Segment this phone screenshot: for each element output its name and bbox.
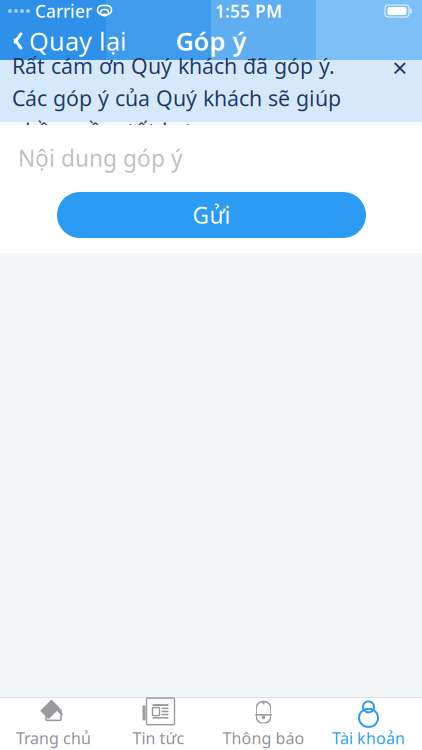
staticText: Quay lại [29, 24, 127, 58]
staticText: ✕ [391, 57, 408, 80]
button[interactable]: Quay lại [0, 22, 139, 60]
staticText: Tài khoản [332, 727, 405, 749]
staticText: Góp ý [175, 24, 246, 58]
staticText: Thông báo [222, 727, 304, 749]
staticText: Rất cám ơn Quý khách đã góp ý. Các góp ý… [12, 51, 341, 144]
button[interactable]: Tin tức [106, 698, 211, 750]
button[interactable]: Thông báo [211, 698, 316, 750]
button[interactable]: Tài khoản [316, 698, 421, 750]
staticText: Nội dung góp ý [18, 143, 183, 173]
staticText: 1:55 PM [215, 0, 282, 22]
button[interactable]: Đóng [378, 37, 422, 99]
staticText: Tin tức [132, 727, 184, 749]
staticText: Trang chủ [16, 727, 91, 749]
staticText: Carrier [35, 0, 92, 22]
button[interactable]: Trang chủ [1, 698, 106, 750]
staticText: Gửi [192, 200, 230, 230]
button[interactable]: Gửi [57, 192, 366, 238]
